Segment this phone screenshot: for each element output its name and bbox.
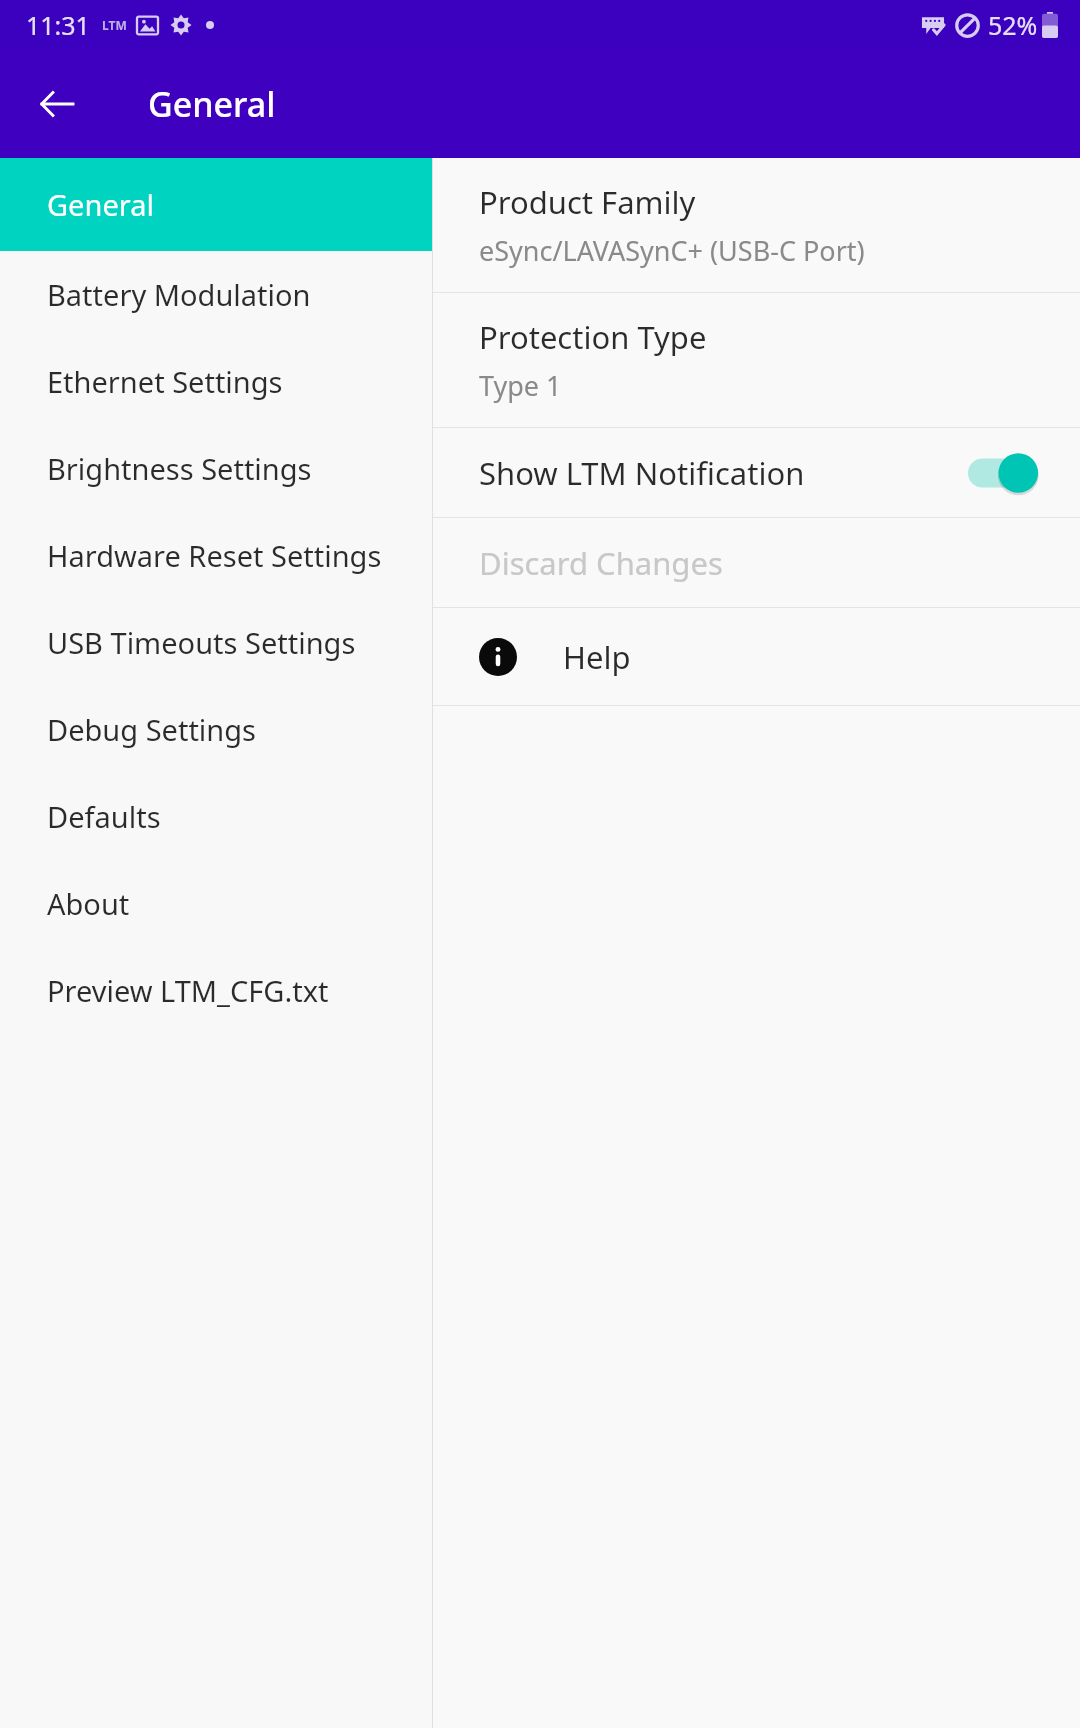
staticText: Type 1 xyxy=(479,367,562,404)
staticText: Ethernet Settings xyxy=(47,362,283,401)
staticText: LTM xyxy=(102,17,127,33)
button[interactable]: Show LTM Notification xyxy=(433,428,1080,517)
button[interactable]: About xyxy=(0,860,432,947)
button[interactable]: General xyxy=(0,158,432,251)
button[interactable]: Debug Settings xyxy=(0,686,432,773)
button[interactable]: Preview LTM_CFG.txt xyxy=(0,947,432,1034)
staticText: Protection Type xyxy=(479,316,707,358)
button[interactable]: Back xyxy=(22,69,92,139)
button[interactable]: Discard Changes xyxy=(433,518,1080,607)
button[interactable]: Brightness Settings xyxy=(0,425,432,512)
other: Show LTM Notification toggle xyxy=(968,451,1042,495)
button[interactable]: Hardware Reset Settings xyxy=(0,512,432,599)
staticText: Product Family xyxy=(479,181,696,223)
staticText: Help xyxy=(563,636,631,678)
staticText: Battery Modulation Settings xyxy=(47,275,424,314)
button[interactable]: USB Timeouts Settings xyxy=(0,599,432,686)
staticText: General xyxy=(148,81,276,127)
staticText: USB Timeouts Settings xyxy=(47,623,356,662)
button[interactable]: Battery Modulation Settings xyxy=(0,251,432,338)
button[interactable]: Product Family xyxy=(433,158,1080,292)
staticText: General xyxy=(47,185,154,224)
staticText: 11:31 xyxy=(26,8,90,42)
staticText: Hardware Reset Settings xyxy=(47,536,382,575)
staticText: Show LTM Notification xyxy=(479,452,968,494)
staticText: Discard Changes xyxy=(479,542,723,584)
staticText: Brightness Settings xyxy=(47,449,312,488)
button[interactable]: Ethernet Settings xyxy=(0,338,432,425)
button[interactable]: Protection Type xyxy=(433,293,1080,427)
staticText: Defaults xyxy=(47,797,161,836)
staticText: 52% xyxy=(988,8,1038,42)
button[interactable]: Defaults xyxy=(0,773,432,860)
staticText: eSync/LAVASynC+ (USB-C Port) xyxy=(479,232,865,269)
staticText: Preview LTM_CFG.txt xyxy=(47,971,329,1010)
button[interactable]: Help xyxy=(433,608,1080,705)
staticText: About xyxy=(47,884,130,923)
staticText: Debug Settings xyxy=(47,710,257,749)
